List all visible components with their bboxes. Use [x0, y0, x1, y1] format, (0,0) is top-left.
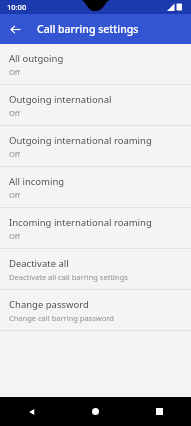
staticText: Off	[9, 67, 21, 77]
staticText: All incoming	[9, 175, 65, 188]
button[interactable]: Back	[0, 397, 63, 426]
button[interactable]: Recent apps	[127, 397, 191, 426]
staticText: Off	[9, 190, 21, 200]
button[interactable]: All incoming	[0, 167, 191, 207]
staticText: Outgoing international roaming	[9, 134, 152, 147]
staticText: 10:00	[7, 2, 27, 12]
staticText: Incoming international roaming	[9, 216, 152, 229]
button[interactable]: Home	[63, 397, 127, 426]
button[interactable]: Back	[5, 19, 25, 39]
staticText: Deactivate all call barring settings	[9, 272, 128, 282]
button[interactable]: Outgoing international	[0, 85, 191, 125]
staticText: Off	[9, 108, 21, 118]
staticText: Off	[9, 231, 21, 241]
button[interactable]: Outgoing international roaming	[0, 126, 191, 166]
staticText: Deactivate all	[9, 257, 69, 270]
button[interactable]: Deactivate all	[0, 249, 191, 289]
staticText: Change password	[9, 298, 89, 311]
staticText: Outgoing international	[9, 93, 112, 106]
button[interactable]: Change password	[0, 290, 191, 330]
staticText: All outgoing	[9, 52, 64, 65]
button[interactable]: All outgoing	[0, 44, 191, 84]
button[interactable]: Incoming international roaming	[0, 208, 191, 248]
staticText: Call barring settings	[37, 22, 139, 36]
staticText: Off	[9, 149, 21, 159]
staticText: Change call barring password	[9, 313, 114, 323]
